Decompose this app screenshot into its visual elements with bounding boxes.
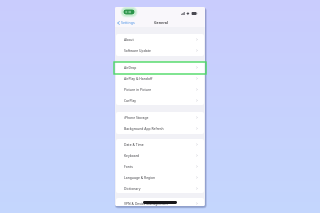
button[interactable]: Fonts [116,161,204,172]
staticText: VPN & Device Management [124,201,196,206]
staticText: Language & Region [124,175,196,180]
staticText: Settings [121,20,135,25]
staticText: AirDrop [124,65,196,70]
button[interactable]: VPN & Device Management [116,198,204,206]
staticText: Keyboard [124,153,196,158]
staticText: CarPlay [124,98,196,103]
button[interactable]: AirPlay & Handoff [116,73,204,84]
staticText: Software Update [124,48,196,53]
staticText: Date & Time [124,142,196,147]
staticText: About [124,37,196,42]
staticText: Fonts [124,164,196,169]
staticText: AirPlay & Handoff [124,76,196,81]
staticText: General [154,20,168,25]
button[interactable]: Keyboard [116,150,204,161]
other: AirDrop highlighted [114,62,206,74]
button[interactable]: About [116,34,204,45]
staticText: iPhone Storage [124,115,196,120]
button[interactable]: Dictionary [116,183,204,193]
button[interactable]: AirDrop [116,62,204,73]
button[interactable]: Software Update [116,45,204,56]
button[interactable]: Date & Time [116,139,204,150]
button[interactable]: Background App Refresh [116,123,204,134]
button[interactable]: iPhone Storage [116,112,204,123]
button[interactable]: Language & Region [116,172,204,183]
button[interactable]: CarPlay [116,95,204,105]
staticText: Picture in Picture [124,87,196,92]
staticText: Dictionary [124,186,196,191]
button[interactable]: Picture in Picture [116,84,204,95]
button[interactable]: Settings [117,19,135,26]
staticText: Background App Refresh [124,126,196,131]
